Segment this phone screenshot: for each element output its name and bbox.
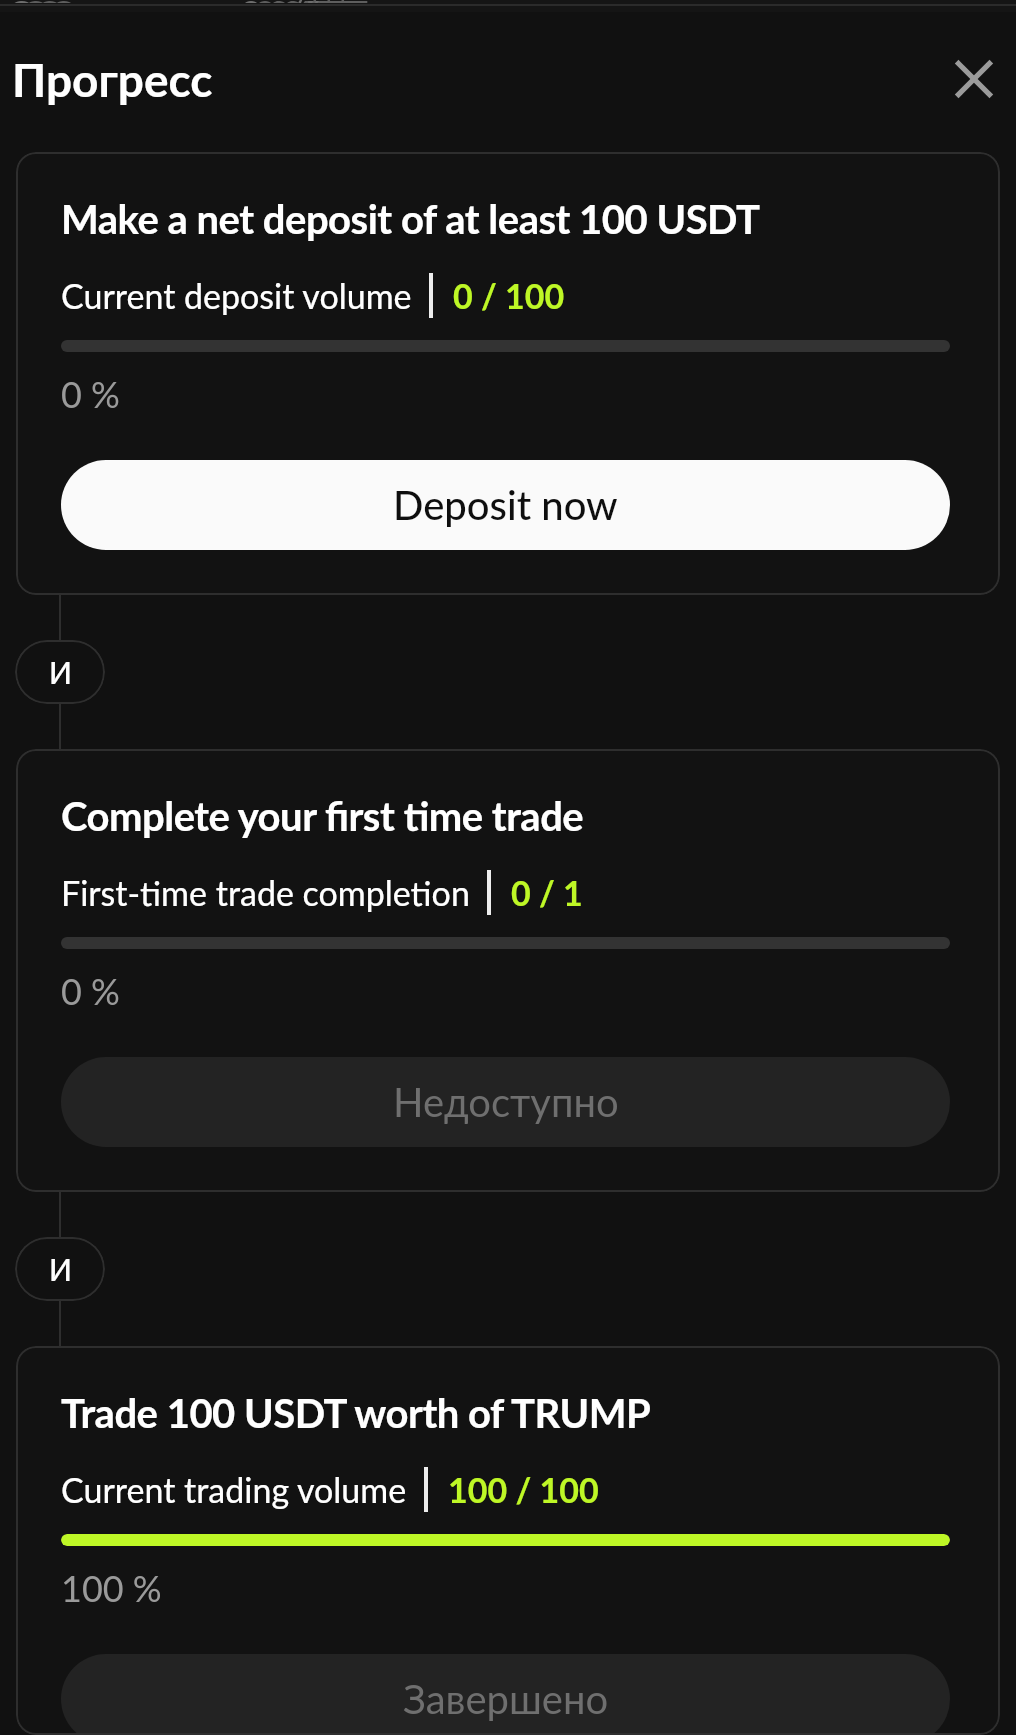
staticText: Current trading volume [61,1469,407,1510]
staticText: 0 % [61,969,120,1012]
staticText: Прогресс [12,52,213,107]
button[interactable]: Завершено [61,1654,950,1735]
staticText: Current deposit volume [61,275,412,316]
button[interactable]: Недоступно [61,1057,950,1147]
staticText: Сотрудники 24/7 оказывают поддержку и по… [20,0,1016,3]
staticText: Сотрудники 24/7 оказывают поддержку и по… [48,0,1016,3]
staticText: И [49,654,72,690]
staticText: Deposit now [393,481,618,529]
staticText: Complete your first time trade [61,792,584,840]
staticText: Завершено [403,1675,609,1723]
staticText: Make a net deposit of at least 100 USDT [61,195,760,243]
staticText: 0 / 100 [453,275,565,316]
staticText: Сотрудники 24/7 оказывают поддержку и по… [6,0,1016,3]
staticText: First-time trade completion [61,872,470,913]
staticText: 0 % [61,372,120,415]
staticText: 0 / 1 [511,872,583,913]
staticText: 100 % [61,1566,162,1609]
staticText: Недоступно [393,1078,619,1126]
staticText: Сотрудники 24/7 оказывают поддержку и по… [34,0,1016,3]
staticText: 100 / 100 [448,1469,599,1510]
button[interactable]: Close [946,51,1002,107]
button[interactable]: Deposit now [61,460,950,550]
staticText: И [49,1251,72,1287]
staticText: Trade 100 USDT worth of TRUMP [61,1389,651,1437]
